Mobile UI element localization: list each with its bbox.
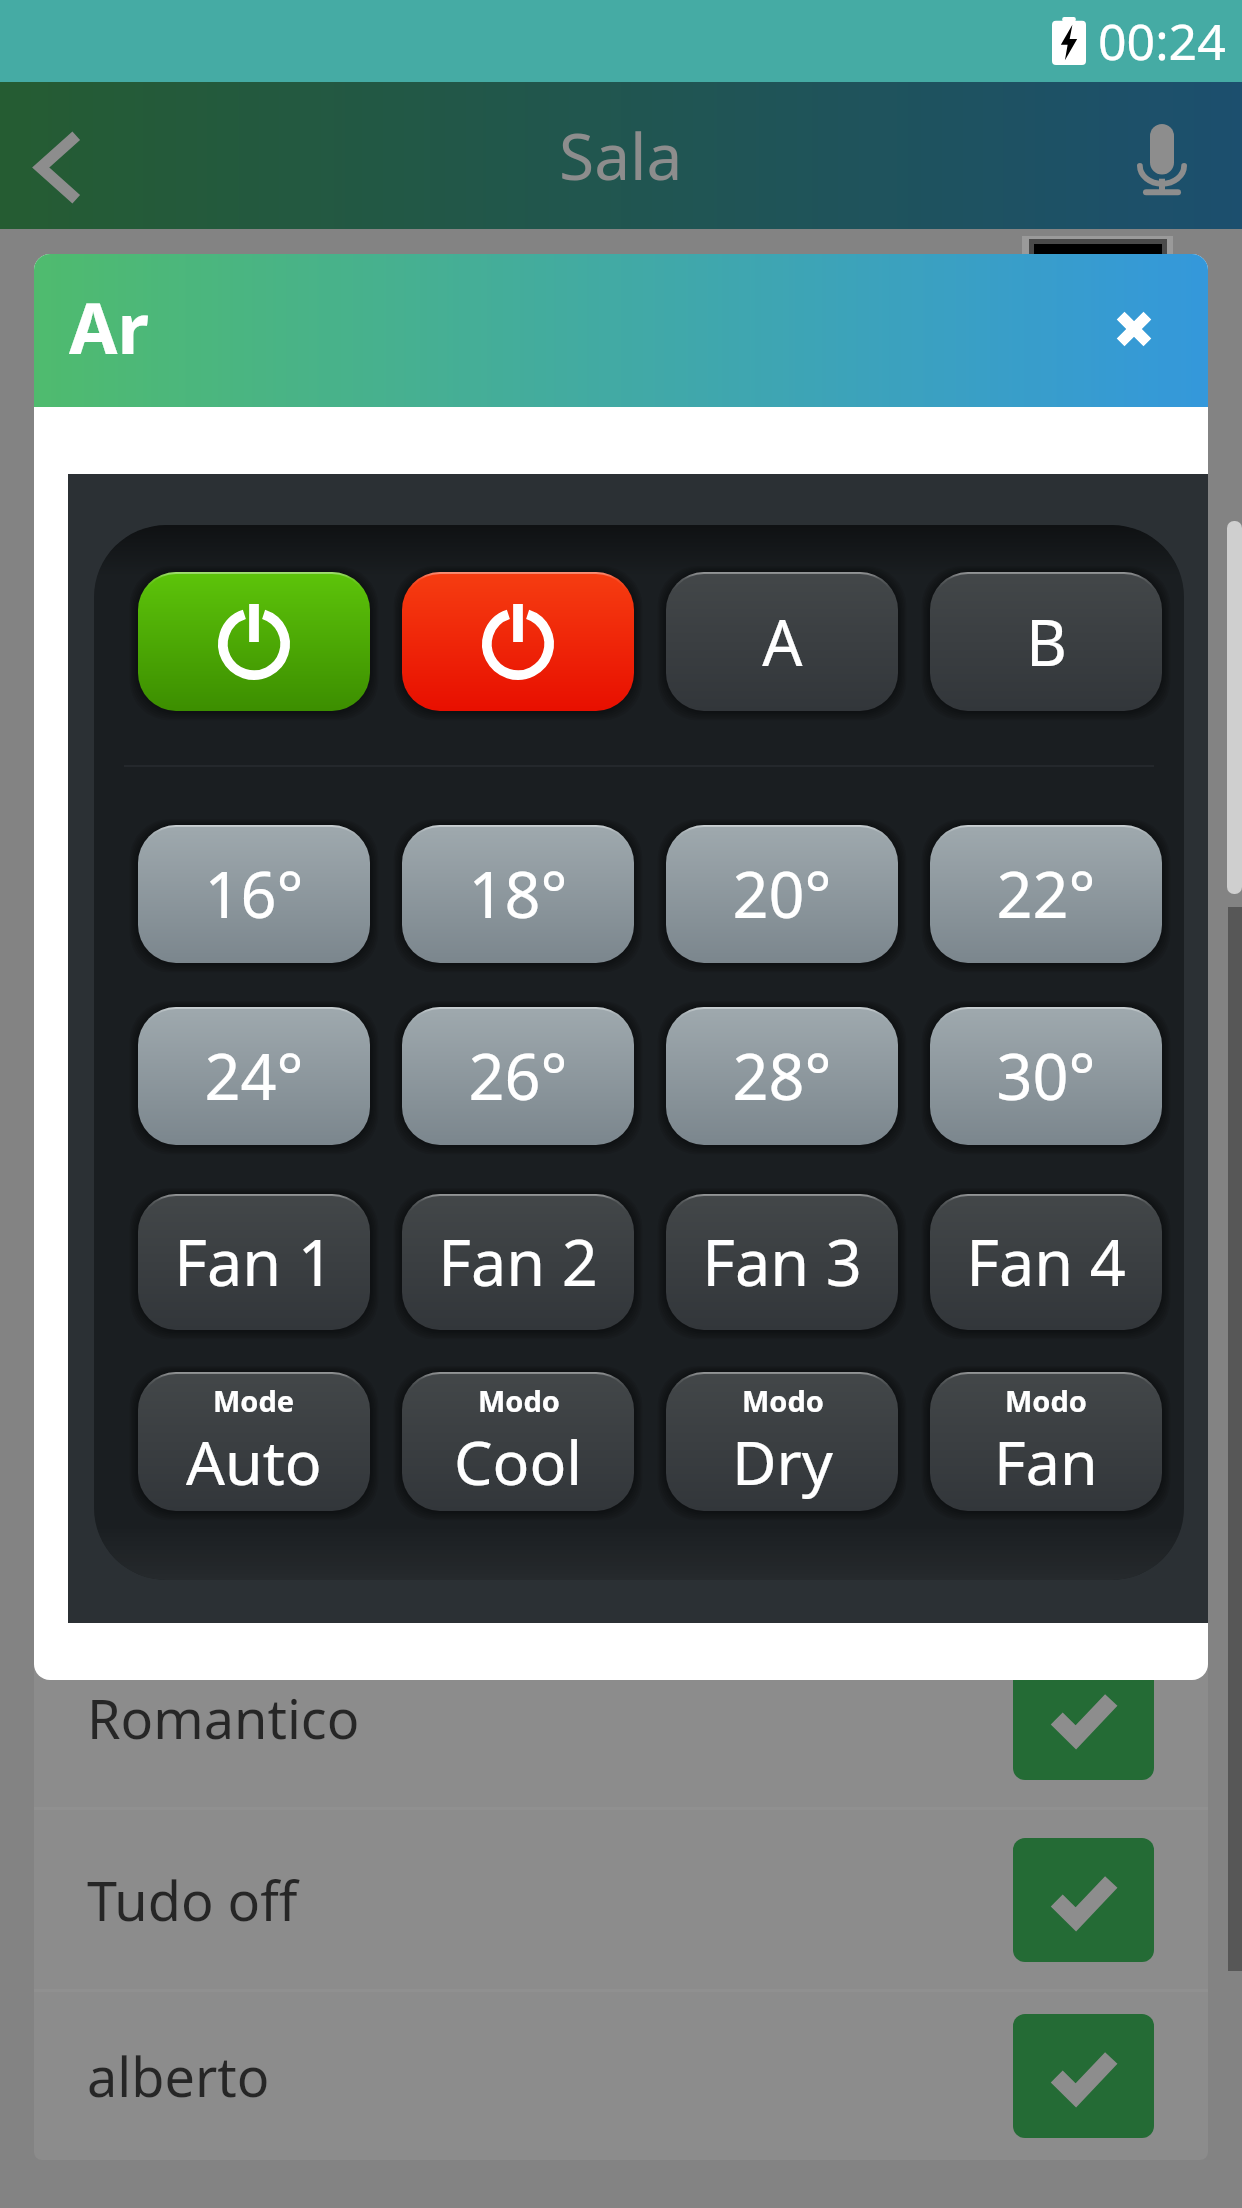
staticText: Auto (186, 1420, 322, 1503)
staticText: Fan 4 (966, 1219, 1126, 1305)
staticText: Modo (478, 1381, 560, 1420)
staticText: 00:24 (1098, 7, 1226, 75)
button[interactable]: 30° (930, 1007, 1162, 1145)
staticText: Tudo off (87, 1863, 298, 1937)
button[interactable]: Activate Romantico (1013, 1656, 1154, 1780)
button[interactable]: B (930, 572, 1162, 711)
staticText: Mode (213, 1381, 295, 1420)
staticText: B (1026, 599, 1067, 685)
staticText: Fan 2 (438, 1219, 598, 1305)
button[interactable]: 28° (666, 1007, 898, 1145)
button[interactable]: Activate Tudo off (1013, 1838, 1154, 1962)
button[interactable]: Fan 2 (402, 1194, 634, 1330)
button[interactable]: Modo (402, 1372, 634, 1511)
staticText: Modo (742, 1381, 824, 1420)
staticText: 20° (732, 851, 832, 937)
button[interactable]: 18° (402, 825, 634, 963)
button[interactable]: alberto (34, 1992, 1208, 2160)
staticText: Fan 1 (174, 1219, 334, 1305)
button[interactable]: Close (1079, 254, 1189, 405)
staticText: Ar (69, 279, 149, 374)
staticText: Sala (559, 112, 683, 199)
button[interactable]: Fan 1 (138, 1194, 370, 1330)
staticText: Modo (1005, 1381, 1087, 1420)
button[interactable]: Tudo off (34, 1810, 1208, 1989)
button[interactable]: 26° (402, 1007, 634, 1145)
button[interactable]: Activate alberto (1013, 2014, 1154, 2138)
staticText: Fan (994, 1420, 1098, 1503)
button[interactable]: Power on (138, 572, 370, 711)
button[interactable]: Fan 3 (666, 1194, 898, 1330)
button[interactable]: A (666, 572, 898, 711)
staticText: 28° (732, 1033, 832, 1119)
button[interactable]: Romantico (34, 1628, 1208, 1807)
button[interactable]: Fan 4 (930, 1194, 1162, 1330)
staticText: Fan 3 (702, 1219, 862, 1305)
button[interactable]: 20° (666, 825, 898, 963)
staticText: Romantico (87, 1681, 360, 1755)
staticText: Dry (732, 1420, 833, 1503)
button[interactable]: Mode (138, 1372, 370, 1511)
button[interactable]: Power off (402, 572, 634, 711)
staticText: 30° (996, 1033, 1096, 1119)
button[interactable]: Modo (930, 1372, 1162, 1511)
staticText: 18° (468, 851, 568, 937)
staticText: 26° (468, 1033, 568, 1119)
staticText: alberto (87, 2039, 270, 2113)
staticText: 24° (204, 1033, 304, 1119)
staticText: 16° (204, 851, 304, 937)
staticText: Cool (454, 1420, 583, 1503)
button[interactable]: 22° (930, 825, 1162, 963)
button[interactable]: Back (0, 82, 140, 229)
staticText: 22° (996, 851, 1096, 937)
button[interactable]: 16° (138, 825, 370, 963)
button[interactable]: Voice command (1092, 82, 1242, 229)
button[interactable]: Modo (666, 1372, 898, 1511)
button[interactable]: 24° (138, 1007, 370, 1145)
staticText: A (762, 599, 803, 685)
